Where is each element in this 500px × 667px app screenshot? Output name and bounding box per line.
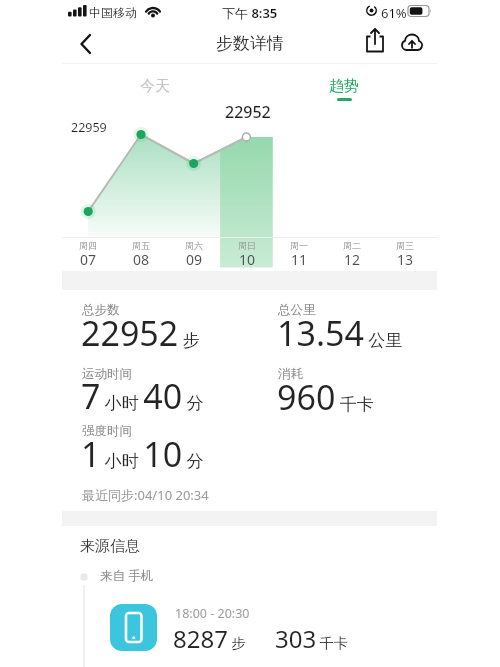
- staticText: 11: [291, 250, 308, 269]
- staticText: 来源信息: [80, 537, 140, 556]
- staticText: 960 千卡: [277, 374, 374, 420]
- staticText: 最近同步:04/10 20:34: [82, 486, 209, 504]
- staticText: 10: [239, 250, 256, 269]
- staticText: 周一: [290, 240, 308, 251]
- staticText: 18:00 - 20:30: [175, 605, 250, 622]
- button[interactable]: [68, 27, 104, 61]
- staticText: 22952: [225, 101, 271, 123]
- staticText: 趋势: [329, 77, 359, 96]
- staticText: 07: [80, 250, 97, 269]
- staticText: 总公里: [278, 302, 316, 318]
- button[interactable]: [361, 26, 391, 60]
- staticText: 7 小时 40 分: [81, 373, 204, 419]
- staticText: 今天: [140, 77, 170, 96]
- staticText: 22952 步: [81, 310, 200, 356]
- staticText: 周四: [79, 240, 97, 251]
- staticText: 总步数: [82, 302, 120, 318]
- staticText: 中国移动: [89, 5, 137, 20]
- staticText: 周三: [396, 240, 414, 251]
- staticText: 周日: [238, 240, 256, 251]
- staticText: 22959: [71, 119, 107, 136]
- staticText: 1 小时 10 分: [81, 431, 204, 477]
- staticText: 09: [186, 250, 203, 269]
- staticText: 13.54 公里: [277, 310, 403, 356]
- button[interactable]: [220, 238, 273, 268]
- button[interactable]: [398, 26, 428, 60]
- staticText: 强度时间: [82, 423, 132, 439]
- staticText: 下午 8:35: [222, 4, 278, 22]
- button[interactable]: [100, 596, 437, 660]
- staticText: 周五: [132, 240, 150, 251]
- staticText: 消耗: [278, 366, 303, 382]
- staticText: 303 千卡: [275, 622, 348, 655]
- staticText: 步数详情: [216, 33, 284, 54]
- staticText: 13: [397, 250, 414, 269]
- staticText: 8287 步: [173, 622, 246, 655]
- staticText: 运动时间: [82, 366, 132, 382]
- staticText: 周六: [185, 240, 203, 251]
- staticText: 12: [344, 250, 361, 269]
- button[interactable]: 今天: [105, 70, 205, 102]
- staticText: 周二: [343, 240, 361, 251]
- staticText: 61%: [381, 4, 407, 22]
- staticText: 来自 手机: [100, 567, 154, 584]
- staticText: 08: [133, 250, 150, 269]
- button[interactable]: 趋势: [294, 70, 394, 102]
